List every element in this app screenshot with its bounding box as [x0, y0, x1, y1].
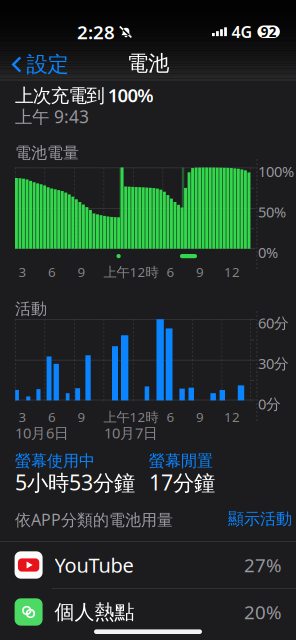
- staticText: 9: [77, 408, 85, 426]
- staticText: 活動: [15, 299, 47, 319]
- staticText: 9: [196, 263, 204, 281]
- button[interactable]: 顯示活動: [222, 505, 296, 533]
- staticText: 27%: [244, 553, 282, 577]
- staticText: 60分: [258, 313, 289, 332]
- staticText: 6: [48, 263, 56, 281]
- staticText: 50%: [258, 202, 286, 221]
- staticText: 6: [166, 263, 174, 281]
- staticText: 3: [18, 263, 26, 281]
- staticText: 10月6日: [15, 423, 69, 442]
- staticText: 電池電量: [15, 143, 79, 163]
- staticText: 12: [224, 408, 240, 426]
- button[interactable]: 個人熱點: [0, 589, 296, 635]
- staticText: 依APP分類的電池用量: [15, 509, 173, 530]
- staticText: 設定: [27, 51, 69, 78]
- staticText: 10月7日: [104, 423, 158, 442]
- staticText: 9: [196, 408, 204, 426]
- staticText: 5小時53分鐘: [15, 468, 135, 496]
- staticText: 30分: [258, 353, 289, 373]
- staticText: 0分: [258, 394, 281, 413]
- staticText: 0%: [258, 242, 278, 262]
- staticText: 上次充電到 100%: [15, 82, 153, 107]
- staticText: 9: [77, 263, 85, 281]
- staticText: 個人熱點: [55, 600, 135, 624]
- staticText: 顯示活動: [228, 509, 292, 529]
- staticText: 螢幕閒置: [149, 451, 213, 471]
- staticText: 17分鐘: [149, 468, 215, 496]
- staticText: 上午12時: [103, 263, 158, 281]
- button[interactable]: 設定: [3, 45, 77, 84]
- staticText: 100%: [258, 161, 294, 181]
- staticText: 6: [48, 408, 56, 426]
- staticText: 12: [224, 263, 240, 281]
- staticText: 4G: [231, 21, 252, 42]
- staticText: YouTube: [55, 552, 134, 578]
- staticText: 20%: [244, 600, 282, 624]
- button[interactable]: YouTube: [0, 542, 296, 588]
- staticText: 92: [261, 23, 277, 41]
- staticText: 上午 9:43: [15, 105, 89, 128]
- staticText: 6: [166, 408, 174, 426]
- staticText: 電池: [127, 50, 169, 77]
- staticText: 螢幕使用中: [15, 451, 95, 471]
- staticText: 2:28: [77, 20, 115, 44]
- staticText: 3: [18, 408, 26, 426]
- staticText: 上午12時: [103, 408, 158, 426]
